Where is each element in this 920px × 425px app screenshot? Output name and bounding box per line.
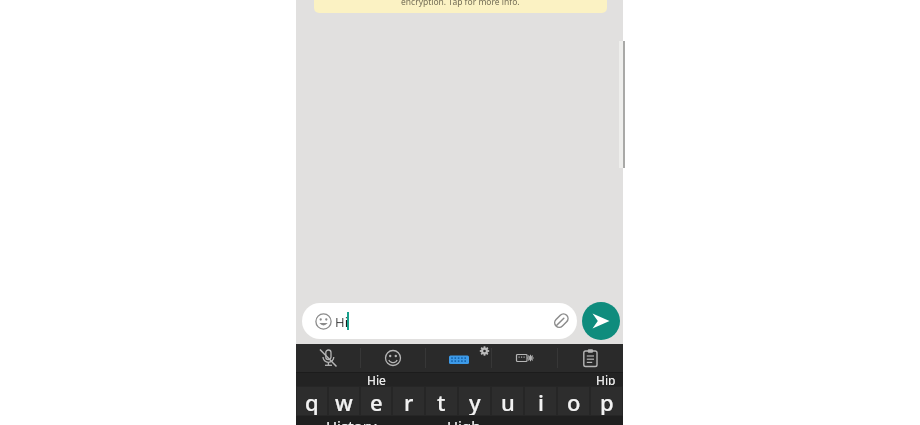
staticText: o	[567, 387, 581, 415]
button[interactable]	[582, 302, 620, 340]
button[interactable]	[296, 344, 360, 372]
button[interactable]: History	[326, 416, 377, 425]
button[interactable]: u	[492, 387, 523, 415]
staticText: u	[501, 387, 515, 415]
staticText: q	[305, 387, 319, 415]
button[interactable]	[361, 344, 425, 372]
button[interactable]: p	[591, 387, 622, 415]
button[interactable]	[492, 344, 557, 372]
button[interactable]: t	[426, 387, 457, 415]
button[interactable]: i	[525, 387, 556, 415]
button[interactable]: w	[329, 387, 359, 415]
staticText: w	[335, 387, 353, 415]
button[interactable]: y	[459, 387, 490, 415]
button[interactable]: e	[361, 387, 391, 415]
button[interactable]: High	[447, 416, 481, 425]
button[interactable]: r	[393, 387, 424, 415]
button[interactable]: o	[558, 387, 589, 415]
button[interactable]: q	[297, 387, 327, 415]
button[interactable]: encryption. Tap for more info.	[314, 0, 607, 13]
button[interactable]: Hie	[367, 372, 386, 385]
button[interactable]	[426, 344, 491, 372]
staticText: Hi	[335, 313, 348, 331]
button[interactable]	[558, 344, 623, 372]
staticText: r	[404, 387, 414, 415]
button[interactable]: Hi	[302, 303, 577, 339]
staticText: i	[538, 387, 544, 415]
staticText: t	[437, 387, 446, 415]
staticText: p	[600, 387, 614, 415]
staticText: y	[469, 387, 481, 415]
staticText: encryption. Tap for more info.	[401, 0, 520, 8]
button[interactable]: Hip	[596, 372, 616, 385]
staticText: e	[370, 387, 383, 415]
